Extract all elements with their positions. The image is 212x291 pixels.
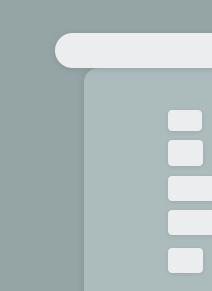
button[interactable]: Row 1 [168, 110, 202, 131]
button[interactable]: Row 5 [168, 248, 203, 273]
button[interactable]: Row 3 [168, 176, 212, 201]
button[interactable]: Row 4 [168, 210, 212, 235]
button[interactable]: Row 2 [168, 140, 203, 166]
